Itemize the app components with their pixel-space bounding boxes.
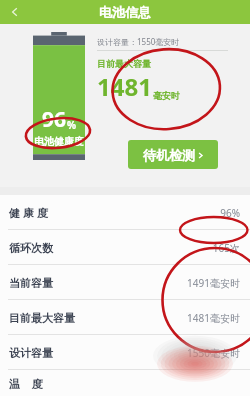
staticText: 96 (42, 105, 67, 134)
button[interactable]: 健 康 度 (0, 195, 250, 230)
staticText: 电池健康度 (34, 135, 84, 148)
staticText: 健 康 度 (9, 205, 48, 220)
staticText: 165次 (212, 241, 240, 255)
staticText: 1481毫安时 (187, 311, 240, 325)
button[interactable]: 待机检测 (128, 140, 218, 169)
staticText: 1491毫安时 (187, 276, 240, 290)
staticText: 1481 (97, 70, 152, 103)
staticText: 设计容量：1550毫安时 (97, 36, 180, 47)
button[interactable]: 温 度 (0, 370, 250, 396)
staticText: % (67, 118, 77, 132)
staticText: 待机检测 (143, 147, 195, 163)
staticText: 目前最大容量 (97, 58, 151, 69)
staticText: 1550毫安时 (187, 346, 240, 360)
staticText: 电池信息 (99, 4, 151, 20)
button[interactable]: Back (0, 0, 30, 24)
button[interactable]: 循环次数 (0, 230, 250, 265)
staticText: 目前最大容量 (9, 311, 75, 325)
button[interactable]: 设计容量 (0, 335, 250, 370)
staticText: 当前容量 (9, 276, 53, 290)
staticText: 温 度 (9, 376, 43, 391)
button[interactable]: 目前最大容量 (0, 300, 250, 335)
staticText: 设计容量 (9, 346, 53, 360)
staticText: 96% (220, 206, 240, 220)
staticText: 毫安时 (153, 90, 180, 101)
button[interactable]: 当前容量 (0, 265, 250, 300)
staticText: 循环次数 (9, 241, 53, 255)
